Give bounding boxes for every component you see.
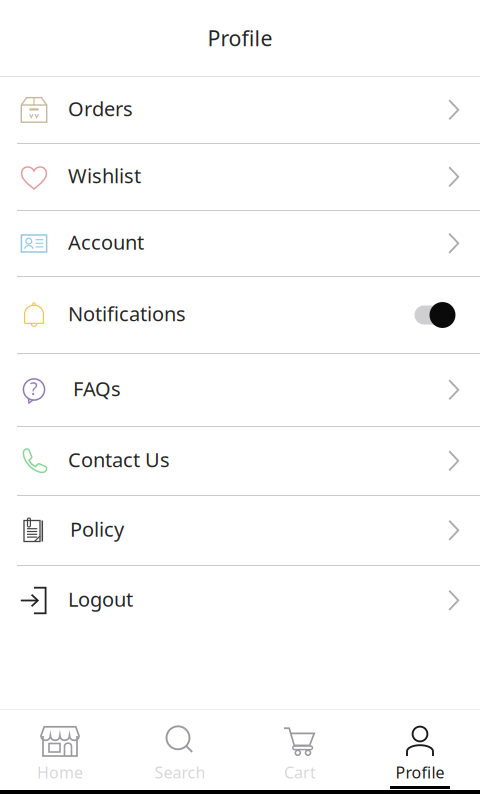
staticText: Notifications [68,300,186,327]
staticText: ? [30,377,38,400]
button[interactable]: Home [0,710,120,790]
button[interactable]: Orders [0,77,480,143]
button[interactable]: Search [120,710,240,790]
staticText: Cart [284,762,316,783]
staticText: Profile [395,762,444,783]
staticText: FAQs [73,375,121,402]
staticText: Contact Us [68,446,170,473]
staticText: Search [154,762,205,783]
staticText: Policy [70,516,124,542]
button[interactable]: Notifications [414,301,460,329]
button[interactable]: Profile [360,710,480,790]
staticText: Account [68,229,144,255]
button[interactable]: Cart [240,710,360,790]
button[interactable]: Wishlist [0,144,480,210]
staticText: Orders [68,95,133,122]
button[interactable]: Logout [0,566,480,635]
button[interactable]: Notifications [0,277,480,353]
button[interactable]: Contact Us [0,427,480,495]
staticText: Wishlist [68,162,141,189]
staticText: Logout [68,586,133,612]
button[interactable]: Policy [0,496,480,565]
button[interactable]: ? [0,354,480,426]
button[interactable]: Account [0,211,480,276]
staticText: Home [37,762,83,783]
staticText: Profile [207,24,272,52]
